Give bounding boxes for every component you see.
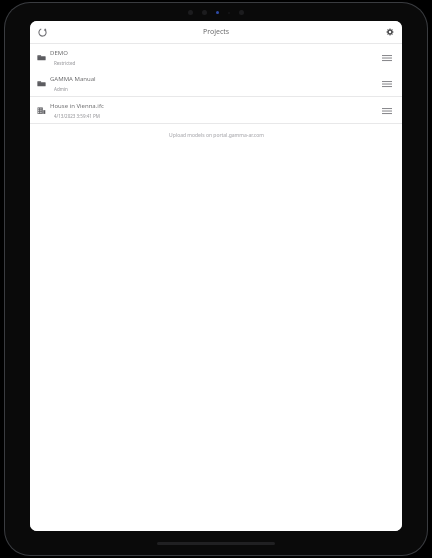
staticText: Upload models on portal.gamma-ar.com: [169, 132, 264, 139]
button[interactable]: House in Vienna.ifc: [30, 97, 402, 123]
staticText: Restricted: [54, 60, 76, 66]
staticText: House in Vienna.ifc: [50, 102, 104, 110]
button[interactable]: Reorder: [378, 101, 396, 119]
button[interactable]: Settings: [381, 23, 399, 41]
button[interactable]: Refresh: [33, 23, 51, 41]
button[interactable]: GAMMA Manual: [30, 70, 402, 96]
staticText: 4/13/2023 3:59:41 PM: [54, 113, 100, 119]
button[interactable]: DEMO: [30, 44, 402, 70]
staticText: DEMO: [50, 49, 68, 57]
staticText: Projects: [203, 27, 230, 37]
staticText: Admin: [54, 86, 68, 92]
button[interactable]: Reorder: [378, 48, 396, 66]
button[interactable]: Reorder: [378, 74, 396, 92]
staticText: GAMMA Manual: [50, 75, 96, 83]
